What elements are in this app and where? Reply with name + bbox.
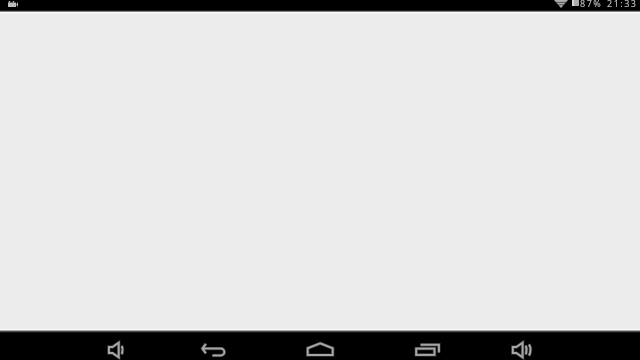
button[interactable]: Volume down <box>100 333 132 360</box>
staticText: 21:33 <box>607 0 638 8</box>
staticText: 87% <box>580 0 603 8</box>
button[interactable]: Recent apps <box>407 333 448 360</box>
button[interactable]: Volume up <box>503 333 539 360</box>
button[interactable]: Home <box>298 333 342 360</box>
button[interactable]: Back <box>193 333 234 360</box>
